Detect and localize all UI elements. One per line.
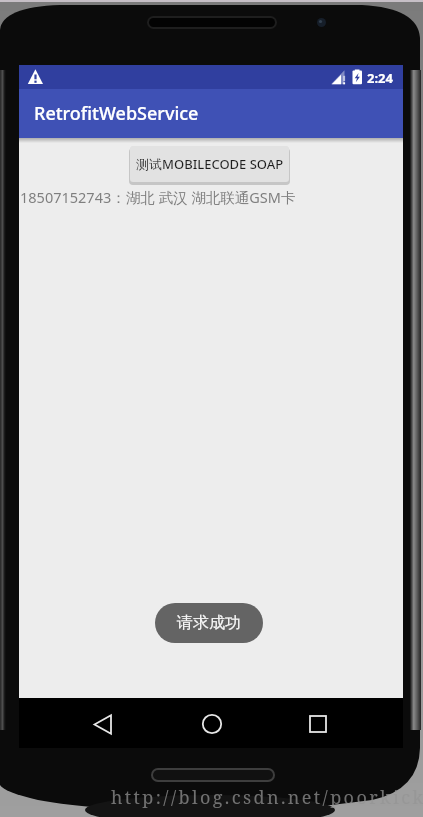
staticText: 2:24 <box>367 69 393 86</box>
button[interactable] <box>83 704 123 744</box>
button[interactable]: 测试MOBILECODE SOAP <box>130 146 289 182</box>
button[interactable] <box>298 704 338 744</box>
staticText: 请求成功 <box>177 613 241 633</box>
staticText: RetrofitWebService <box>34 101 199 126</box>
staticText: 18507152743：湖北 武汉 湖北联通GSM卡 <box>20 187 296 207</box>
staticText: 测试MOBILECODE SOAP <box>136 155 284 173</box>
staticText: http://blog.csdn.net/poorkick <box>111 785 423 809</box>
button[interactable] <box>192 704 232 744</box>
